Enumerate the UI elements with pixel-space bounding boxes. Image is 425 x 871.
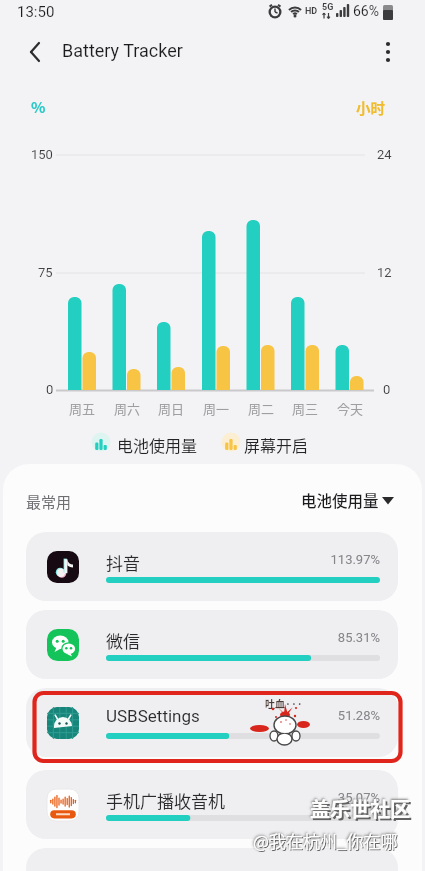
- staticText: 电池使用量: [117, 433, 198, 456]
- staticText: 周六: [113, 399, 141, 418]
- staticText: 5G: [322, 2, 334, 13]
- staticText: 抖音: [106, 550, 140, 575]
- staticText: %: [31, 96, 46, 118]
- staticText: 周二: [247, 399, 275, 418]
- staticText: @我在杭州_你在哪: [254, 829, 399, 854]
- staticText: @我在杭州_你在哪: [253, 828, 398, 853]
- staticText: 周日: [157, 399, 185, 418]
- staticText: 13:50: [17, 3, 55, 21]
- button[interactable]: 电池使用量: [296, 486, 398, 512]
- staticText: 12: [377, 265, 392, 280]
- staticText: 35.07%: [300, 790, 380, 805]
- button[interactable]: [372, 36, 404, 68]
- staticText: 周三: [291, 399, 319, 418]
- staticText: 盖乐世社区: [310, 794, 410, 823]
- staticText: 75: [38, 265, 53, 280]
- button[interactable]: 手机广播收音机: [26, 770, 398, 839]
- staticText: 微信: [106, 628, 140, 653]
- staticText: 小时: [356, 97, 385, 118]
- button[interactable]: [18, 36, 54, 68]
- staticText: 51.28%: [300, 708, 380, 723]
- staticText: 手机广播收音机: [106, 788, 225, 813]
- staticText: 电池使用量: [301, 489, 379, 511]
- staticText: HD: [305, 6, 318, 17]
- staticText: 周五: [68, 399, 96, 418]
- button[interactable]: 抖音: [26, 532, 398, 601]
- staticText: 0: [46, 382, 54, 397]
- staticText: 85.31%: [300, 630, 380, 645]
- staticText: 最常用: [26, 491, 72, 513]
- staticText: Battery Tracker: [62, 40, 183, 61]
- button[interactable]: USBSettings: [26, 688, 398, 757]
- staticText: 113.97%: [300, 552, 380, 567]
- staticText: 今天: [336, 399, 364, 418]
- staticText: 盖乐世社区: [312, 796, 412, 825]
- button[interactable]: 微信: [26, 610, 398, 679]
- staticText: 66%: [353, 3, 379, 19]
- staticText: 屏幕开启: [244, 433, 309, 456]
- staticText: 150: [31, 147, 53, 162]
- staticText: 吐血···: [265, 696, 303, 710]
- staticText: 0: [383, 382, 391, 397]
- staticText: 24: [377, 147, 392, 162]
- staticText: 周一: [202, 399, 230, 418]
- staticText: USBSettings: [106, 706, 200, 726]
